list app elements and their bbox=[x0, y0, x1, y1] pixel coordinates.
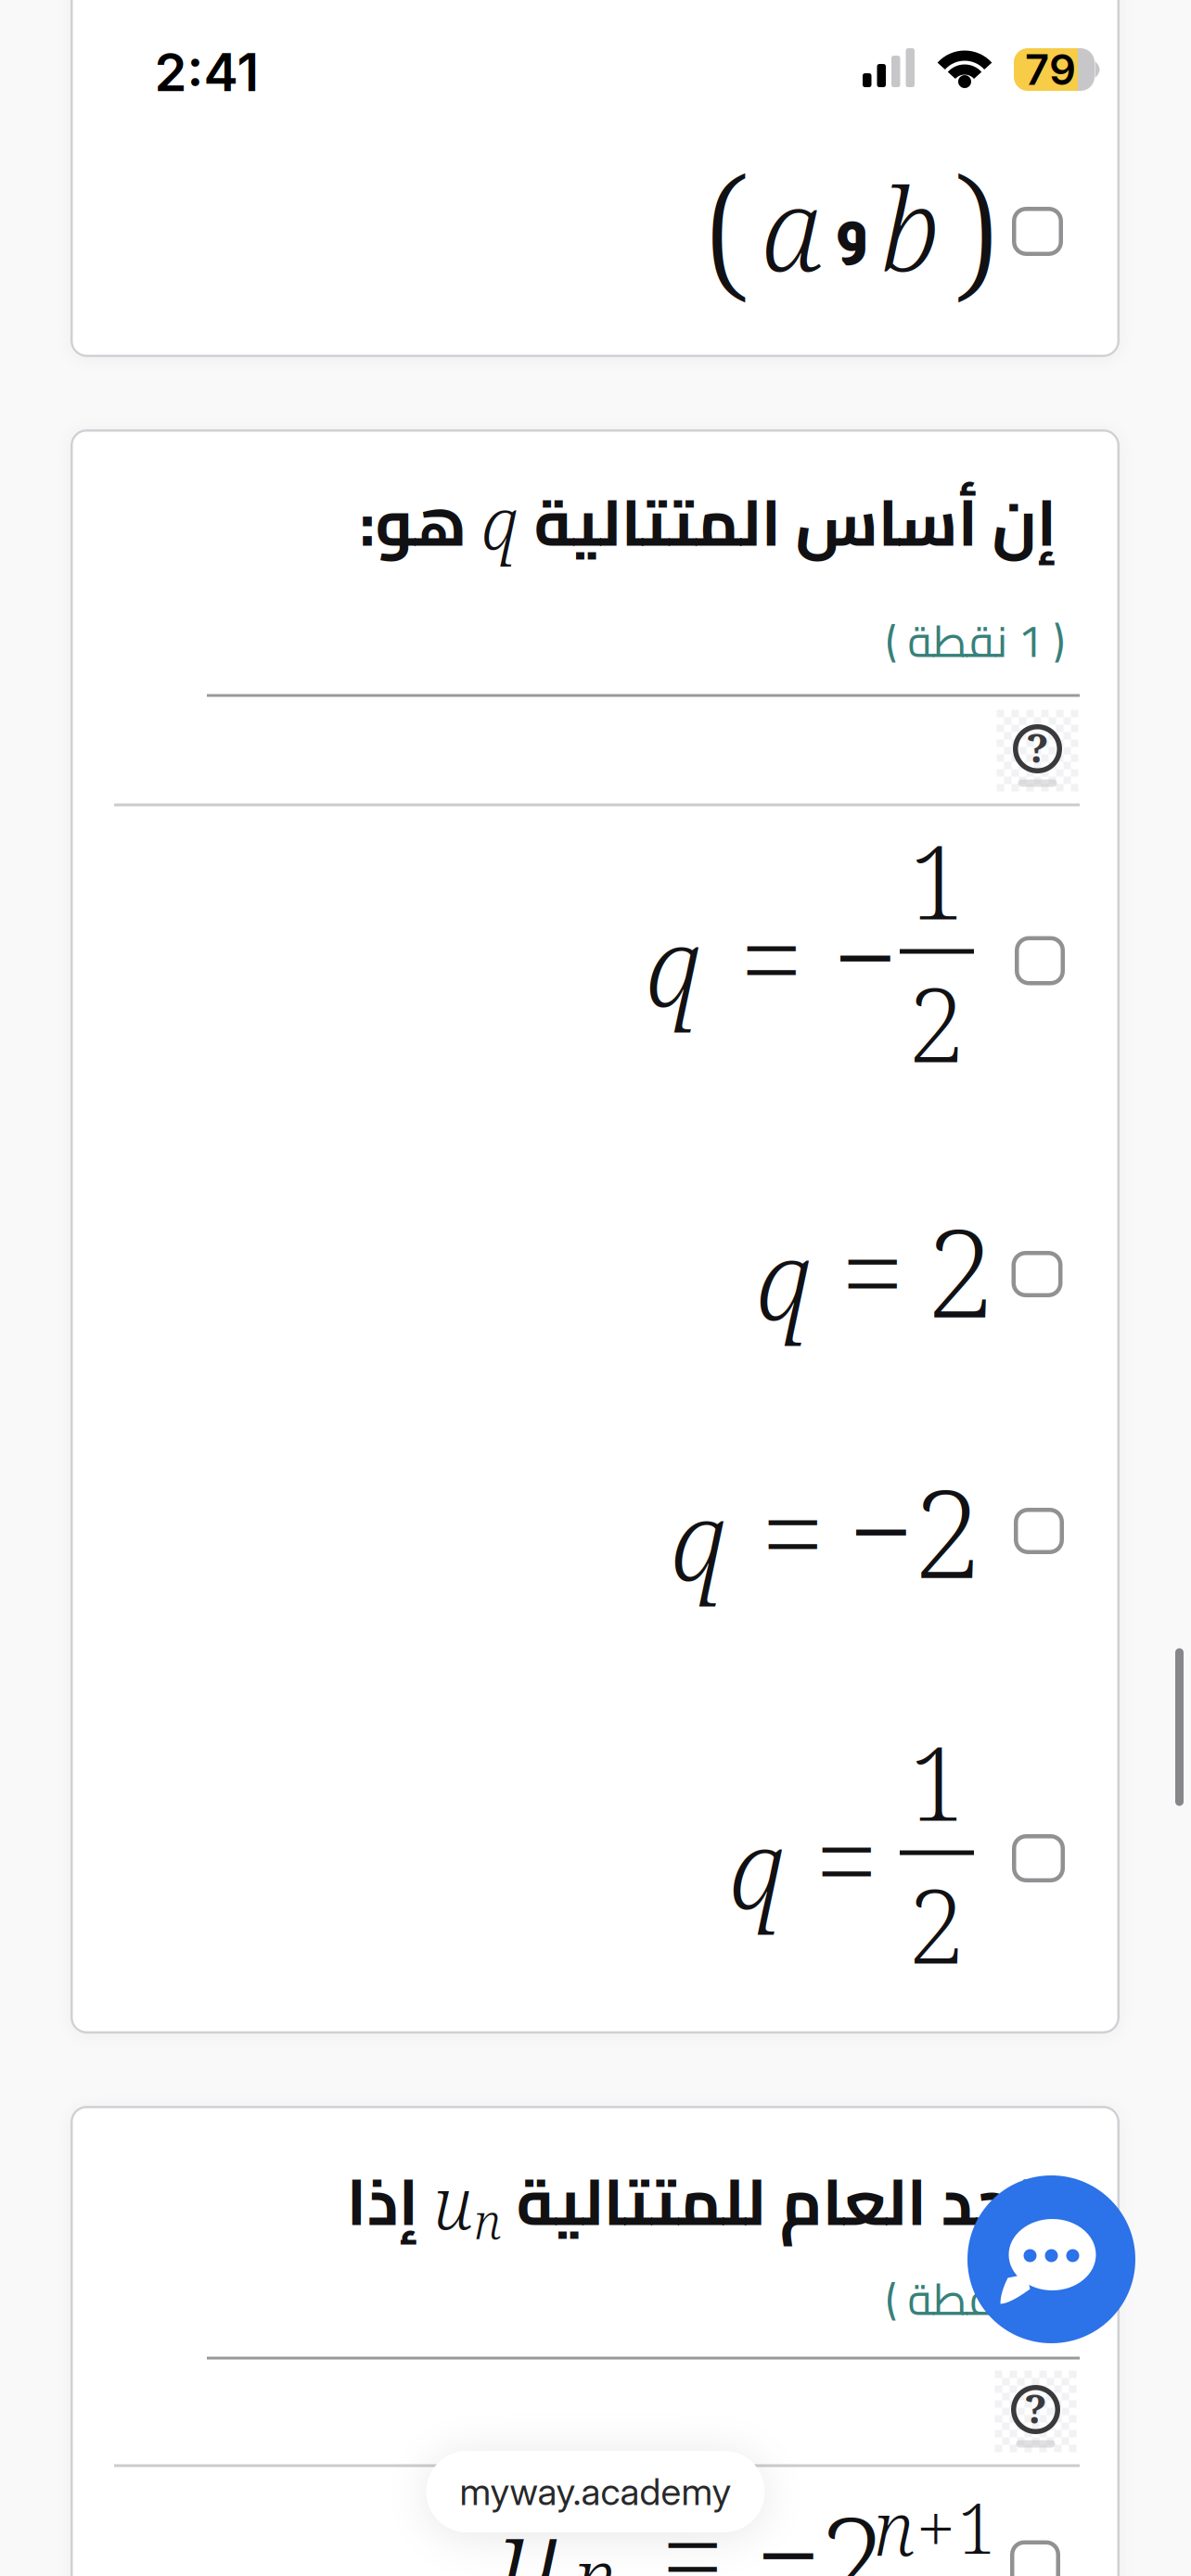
staticText: = bbox=[740, 880, 804, 1035]
button[interactable]: Select answer bbox=[1012, 1834, 1065, 1882]
staticText: ( bbox=[704, 126, 749, 328]
staticText: 1 bbox=[909, 811, 965, 949]
staticText: 2 bbox=[914, 1448, 982, 1613]
button[interactable]: Help bbox=[997, 710, 1078, 791]
staticText: q bbox=[481, 473, 519, 571]
staticText: 2:41 bbox=[154, 41, 259, 104]
staticText: إن أساس المتتالية bbox=[533, 462, 1057, 582]
staticText: b bbox=[880, 150, 940, 305]
staticText: u bbox=[433, 2153, 472, 2250]
staticText: الحد العام للمتتالية bbox=[516, 2141, 1057, 2262]
staticText: = bbox=[761, 1454, 825, 1609]
staticText: n bbox=[874, 2476, 915, 2576]
staticText: = bbox=[841, 1194, 905, 1349]
button[interactable]: Select answer bbox=[1015, 936, 1065, 985]
staticText: 79 bbox=[1025, 44, 1076, 95]
staticText: q bbox=[671, 1464, 726, 1612]
button[interactable]: Chat support bbox=[967, 2175, 1135, 2343]
staticText: 1 bbox=[909, 1712, 965, 1850]
button[interactable]: Select answer bbox=[1014, 1508, 1064, 1554]
staticText: n bbox=[474, 2186, 501, 2254]
staticText: ( 1 نقطة ) bbox=[885, 2257, 1065, 2340]
staticText: q bbox=[646, 890, 701, 1038]
staticText: 2 bbox=[820, 2476, 887, 2576]
staticText: − bbox=[833, 878, 898, 1033]
button[interactable]: Select answer bbox=[1012, 1251, 1063, 1297]
staticText: ) bbox=[952, 126, 997, 328]
staticText: q bbox=[756, 1204, 812, 1352]
staticText: ( 1 نقطة ) bbox=[885, 599, 1065, 682]
staticText: = bbox=[815, 1782, 879, 1937]
button[interactable]: Help bbox=[995, 2371, 1076, 2452]
button[interactable]: Select answer bbox=[1010, 2540, 1060, 2576]
staticText: 2 bbox=[909, 1855, 965, 1993]
staticText: a bbox=[762, 150, 822, 305]
staticText: إذا bbox=[346, 2141, 418, 2262]
staticText: n bbox=[575, 2523, 616, 2576]
staticText: − bbox=[756, 2475, 821, 2576]
staticText: = bbox=[661, 2477, 725, 2576]
staticText: − bbox=[849, 1452, 914, 1607]
staticText: 2 bbox=[909, 954, 965, 1092]
staticText: myway.academy bbox=[460, 2469, 731, 2514]
staticText: و bbox=[834, 195, 868, 264]
staticText: ? bbox=[1026, 719, 1049, 775]
staticText: q bbox=[729, 1793, 785, 1941]
staticText: u bbox=[498, 2477, 563, 2576]
button[interactable]: Select answer bbox=[1012, 207, 1063, 256]
staticText: ? bbox=[1025, 2380, 1047, 2435]
staticText: هو: bbox=[359, 462, 467, 582]
staticText: + bbox=[916, 2480, 955, 2574]
staticText: 2 bbox=[927, 1188, 995, 1353]
staticText: 1 bbox=[957, 2480, 996, 2574]
